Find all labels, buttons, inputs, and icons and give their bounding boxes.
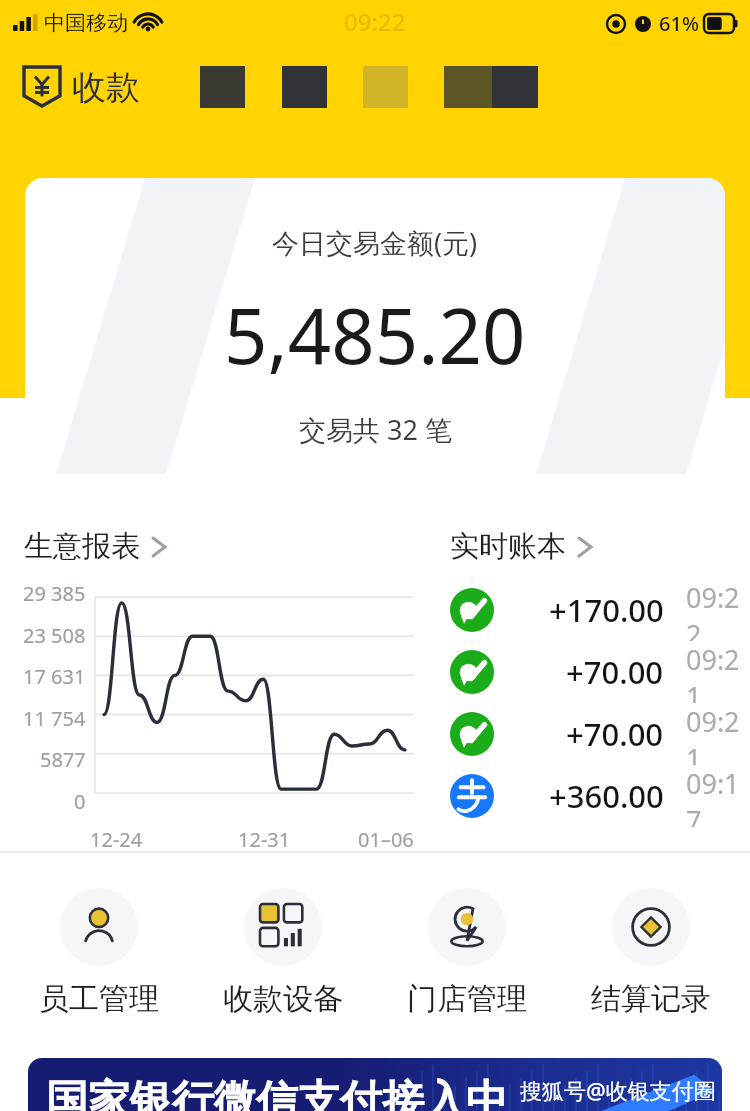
staticText: 17 631 — [23, 663, 86, 690]
button[interactable]: 国家银行微信支付接入中 — [28, 1058, 722, 1111]
staticText: 生意报表 — [24, 528, 140, 565]
staticText: +70.00 — [566, 651, 664, 693]
staticText: 61% — [659, 10, 699, 37]
staticText: 09:22 — [344, 5, 406, 38]
staticText: 今日交易金额(元) — [272, 224, 478, 261]
button[interactable]: +70.00 — [430, 703, 750, 765]
staticText: 结算记录 — [591, 980, 711, 1018]
button[interactable]: +70.00 — [430, 641, 750, 703]
staticText: 12-24 — [90, 826, 143, 853]
button[interactable]: 收款设备 — [198, 888, 368, 1018]
button[interactable]: 实时账本 — [450, 528, 594, 565]
staticText: 09:21 — [686, 703, 750, 765]
button[interactable]: 员工管理 — [14, 888, 184, 1018]
staticText: 搜狐号@收银支付圈 — [520, 1075, 716, 1105]
staticText: 门店管理 — [407, 980, 527, 1018]
staticText: 09:21 — [686, 641, 750, 703]
staticText: 0 — [74, 788, 86, 815]
staticText: 29 385 — [23, 580, 86, 607]
button[interactable]: 门店管理 — [382, 888, 552, 1018]
button[interactable]: 生意报表 — [24, 528, 168, 565]
staticText: 收款 — [72, 66, 140, 109]
staticText: 交易共 32 笔 — [299, 411, 452, 448]
staticText: 收款设备 — [223, 980, 343, 1018]
staticText: +170.00 — [549, 589, 664, 631]
staticText: 23 508 — [23, 622, 86, 649]
staticText: +70.00 — [566, 713, 664, 755]
button[interactable]: 收款 — [22, 65, 140, 109]
staticText: 国家银行微信支付接入中 — [46, 1075, 508, 1111]
staticText: +360.00 — [549, 775, 664, 817]
button[interactable]: 结算记录 — [566, 888, 736, 1018]
staticText: 中国移动 — [44, 10, 128, 36]
button[interactable]: +170.00 — [430, 579, 750, 641]
staticText: 12-31 — [238, 826, 291, 853]
button[interactable]: 今日交易金额(元) — [25, 178, 725, 474]
staticText: 09:17 — [686, 765, 750, 827]
staticText: 01–06 — [358, 826, 414, 853]
staticText: 09:22 — [686, 579, 750, 641]
button[interactable]: +360.00 — [430, 765, 750, 827]
staticText: 5877 — [40, 746, 86, 773]
staticText: 5,485.20 — [224, 283, 526, 387]
staticText: 11 754 — [23, 705, 86, 732]
staticText: 员工管理 — [39, 980, 159, 1018]
staticText: 实时账本 — [450, 528, 566, 565]
